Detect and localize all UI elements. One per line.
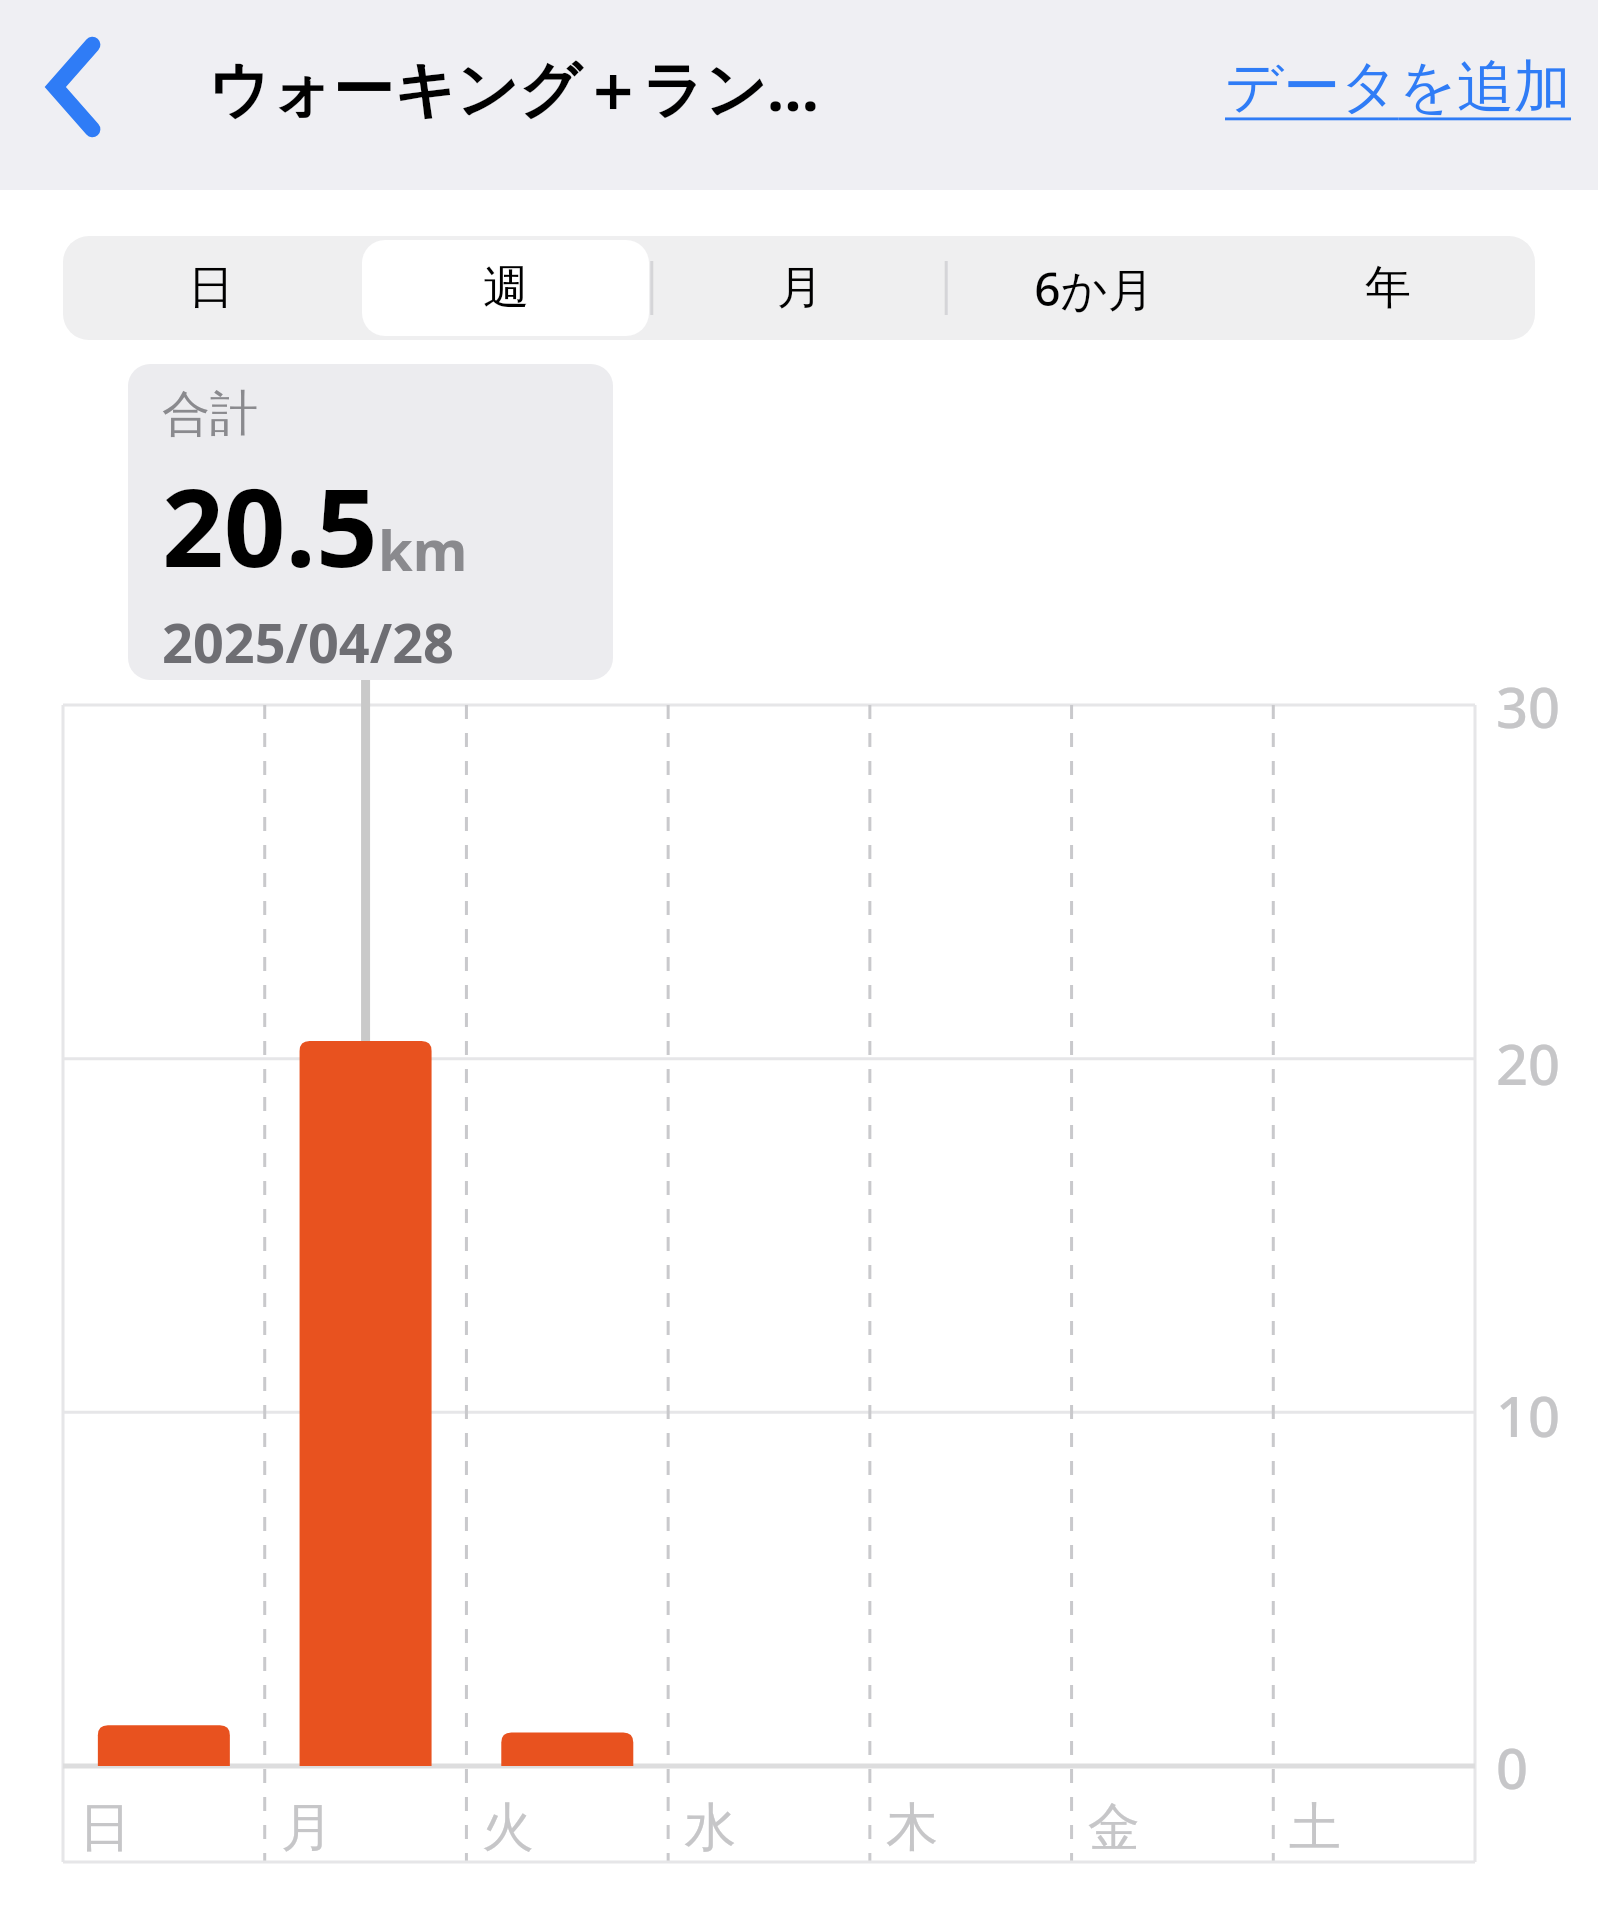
staticText: ウォーキング＋ラン…	[208, 46, 820, 129]
staticText: km	[378, 511, 468, 587]
staticText: データを追加	[1225, 51, 1572, 123]
staticText: 土	[1289, 1795, 1341, 1861]
staticText: 2025/04/28	[162, 605, 454, 679]
button[interactable]: 日	[67, 240, 354, 336]
staticText: 金	[1088, 1795, 1140, 1861]
staticText: 20	[1496, 1025, 1561, 1101]
staticText: 日	[188, 259, 234, 317]
button[interactable]: 合計	[128, 364, 613, 680]
staticText: 火	[482, 1795, 534, 1861]
staticText: 20.5	[162, 452, 378, 599]
staticText: 0	[1496, 1729, 1529, 1805]
staticText: 合計	[162, 384, 258, 444]
button[interactable]: 週	[362, 240, 649, 336]
staticText: 6か月	[1034, 257, 1154, 320]
staticText: 10	[1496, 1377, 1561, 1453]
button[interactable]: 6か月	[951, 240, 1237, 336]
staticText: 30	[1496, 668, 1561, 744]
button[interactable]: 月	[657, 240, 943, 336]
staticText: 日	[79, 1795, 131, 1861]
button[interactable]: Back	[20, 22, 130, 152]
staticText: 木	[886, 1795, 938, 1861]
staticText: 月	[281, 1795, 333, 1861]
staticText: 月	[777, 259, 823, 317]
staticText: 水	[684, 1795, 736, 1861]
button[interactable]: 年	[1245, 240, 1531, 336]
staticText: 年	[1365, 259, 1411, 317]
button[interactable]: データを追加	[1217, 41, 1580, 133]
staticText: 週	[483, 259, 529, 317]
